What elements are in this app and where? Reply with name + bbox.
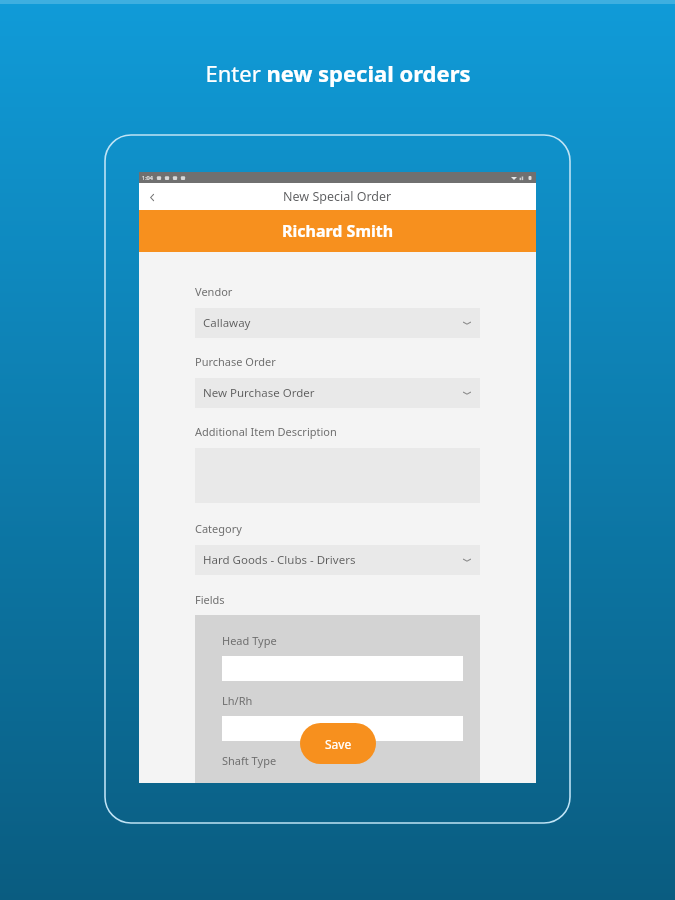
staticText: New Purchase Order (203, 385, 315, 401)
staticText: Head Type (222, 633, 277, 648)
staticText: Enter new special orders (205, 58, 471, 88)
staticText: Fields (195, 592, 225, 607)
staticText: Save (325, 736, 352, 752)
button[interactable]: New Purchase Order (195, 378, 480, 408)
staticText: Purchase Order (195, 354, 276, 369)
button[interactable]: Back (139, 184, 165, 210)
staticText: Shaft Type (222, 753, 277, 768)
staticText: Category (195, 521, 242, 536)
staticText: Hard Goods - Clubs - Drivers (203, 552, 356, 568)
staticText: Callaway (203, 315, 251, 331)
button[interactable]: Save (300, 723, 376, 764)
button[interactable]: Callaway (195, 308, 480, 338)
button[interactable]: Richard Smith (139, 210, 536, 252)
staticText: Lh/Rh (222, 693, 253, 708)
staticText: New Special Order (283, 188, 392, 205)
staticText: 1:04 (142, 174, 153, 181)
staticText: Vendor (195, 284, 233, 299)
button[interactable]: Hard Goods - Clubs - Drivers (195, 545, 480, 575)
button[interactable] (222, 716, 463, 741)
staticText: Additional Item Description (195, 424, 337, 439)
staticText: Richard Smith (282, 220, 394, 242)
